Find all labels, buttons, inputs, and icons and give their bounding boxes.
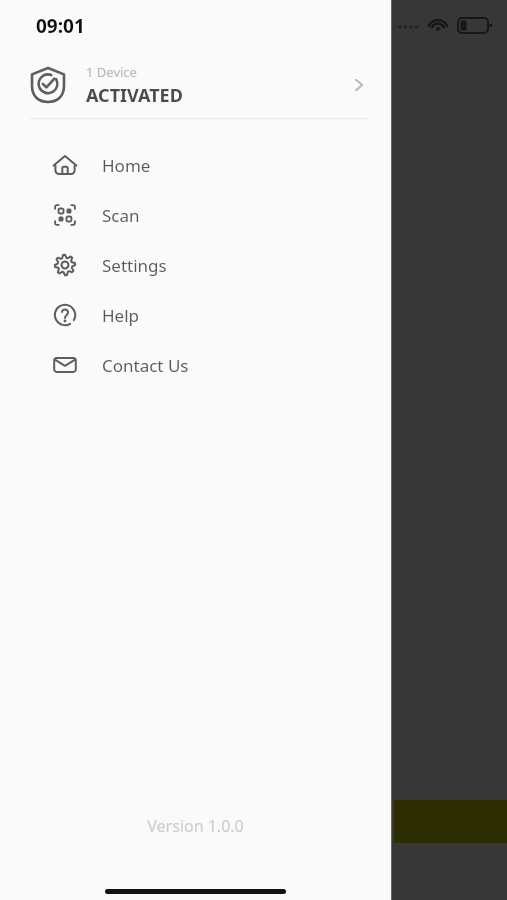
button[interactable] (392, 0, 507, 900)
button[interactable]: Scan (0, 190, 391, 240)
staticText: Version 1.0.0 (0, 815, 391, 837)
button[interactable]: Help (0, 290, 391, 340)
button[interactable]: Home (0, 140, 391, 190)
staticText: 09:01 (36, 13, 85, 39)
staticText: Settings (102, 254, 167, 277)
staticText: Contact Us (102, 354, 189, 377)
staticText: ACTIVATED (86, 83, 183, 108)
button[interactable]: 1 Device (0, 52, 391, 118)
staticText: 1 Device (86, 63, 137, 81)
staticText: Home (102, 154, 151, 177)
staticText: Scan (102, 204, 140, 227)
button[interactable]: Settings (0, 240, 391, 290)
staticText: Help (102, 304, 140, 327)
button[interactable]: Contact Us (0, 340, 391, 390)
